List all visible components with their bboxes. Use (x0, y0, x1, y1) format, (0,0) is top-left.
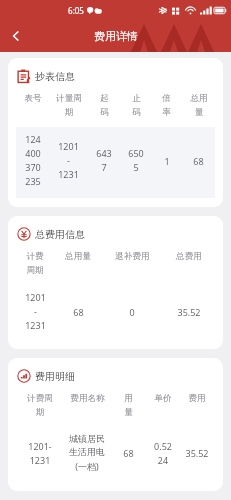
staticText: 费用明细 (35, 370, 75, 383)
staticText: 用 量 (124, 393, 133, 418)
staticText: 1201 - 1231 (25, 291, 46, 332)
staticText: 35.52 (185, 447, 209, 459)
staticText: 1201 - 1231 (58, 140, 79, 181)
staticText: 起 码 (100, 93, 109, 118)
staticText: 35.52 (177, 306, 201, 318)
staticText: 643 7 (96, 147, 112, 174)
staticText: 倍 率 (162, 93, 171, 118)
staticText: 68 (73, 306, 84, 318)
staticText: 计费周 期 (27, 393, 53, 418)
staticText: 计量周 期 (56, 93, 82, 118)
staticText: 总用 量 (190, 93, 208, 118)
staticText: 费用 (188, 393, 206, 404)
staticText: 费用名称 (70, 393, 105, 404)
staticText: 表号 (24, 93, 42, 104)
button[interactable]: Back (0, 20, 32, 52)
staticText: 总费用 (176, 251, 202, 262)
staticText: 计费 周期 (26, 251, 44, 276)
staticText: 650 5 (128, 147, 144, 174)
staticText: 68 (193, 155, 204, 167)
staticText: 68 (123, 447, 134, 459)
staticText: 总费用信息 (35, 228, 85, 241)
staticText: 止 码 (132, 93, 141, 118)
staticText: 抄表信息 (35, 70, 75, 83)
staticText: 0.52 24 (154, 440, 172, 467)
staticText: 退补费用 (115, 251, 150, 262)
staticText: 6:05 (68, 5, 84, 16)
staticText: 费用详情 (94, 29, 138, 43)
staticText: 总用量 (65, 251, 91, 262)
staticText: 0 (129, 306, 135, 318)
staticText: 1201- 1231 (28, 440, 52, 467)
staticText: 城镇居民 生活用电 (一档) (69, 433, 105, 473)
staticText: 1 (164, 155, 170, 167)
staticText: 单价 (154, 393, 172, 404)
staticText: 124 400 370 235 (25, 133, 41, 188)
